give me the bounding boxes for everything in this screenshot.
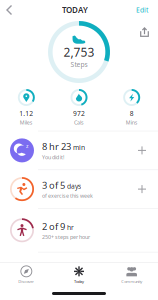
staticText: You did it! [42, 154, 64, 161]
staticText: Cals [74, 119, 84, 126]
staticText: 972 [73, 109, 85, 118]
staticText: Today [74, 279, 84, 284]
staticText: 1.12 [19, 109, 33, 118]
staticText: 8 [130, 109, 134, 118]
staticText: 3 of 5 [42, 179, 65, 191]
button[interactable]: Edit [128, 0, 158, 20]
staticText: TODAY [62, 5, 88, 15]
staticText: 2 of 9 [42, 220, 65, 232]
button[interactable]: Community [105, 263, 158, 287]
staticText: of exercise this week [42, 192, 93, 199]
button[interactable]: Discover [0, 263, 53, 287]
staticText: Miles [20, 119, 33, 126]
staticText: Discover [18, 279, 34, 284]
staticText: hr [67, 223, 74, 232]
button[interactable]: 3 of 5 [0, 170, 158, 208]
staticText: Edit [136, 6, 148, 14]
button[interactable]: z [0, 131, 158, 169]
staticText: days [67, 182, 81, 191]
staticText: Steps [70, 60, 87, 69]
staticText: min [73, 143, 85, 152]
button[interactable]: Today [53, 263, 105, 287]
staticText: 250+ steps per hour [42, 233, 90, 241]
button[interactable]: Share [132, 21, 158, 43]
staticText: Community [121, 279, 142, 284]
staticText: 2,753 [63, 44, 94, 60]
staticText: Mins [126, 119, 138, 126]
button[interactable]: 2 of 9 [0, 209, 158, 252]
staticText: 8 hr 23 [42, 140, 71, 153]
staticText: z [26, 142, 29, 149]
button[interactable]: Back [0, 0, 22, 20]
